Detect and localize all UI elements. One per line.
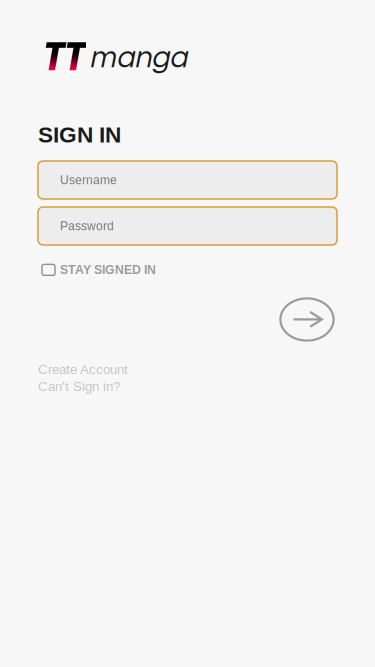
button[interactable]: STAY SIGNED IN [42, 263, 156, 277]
staticText: STAY SIGNED IN [60, 263, 156, 277]
staticText: Username [60, 173, 117, 187]
button[interactable]: Can't Sign in? [38, 379, 120, 394]
staticText: SIGN IN [38, 122, 121, 147]
button[interactable]: Create Account [38, 362, 128, 377]
staticText: Create Account [38, 362, 128, 377]
button[interactable]: Sign in [279, 297, 335, 342]
staticText: Can't Sign in? [38, 379, 120, 394]
staticText: manga [89, 42, 187, 74]
staticText: Password [60, 219, 114, 233]
